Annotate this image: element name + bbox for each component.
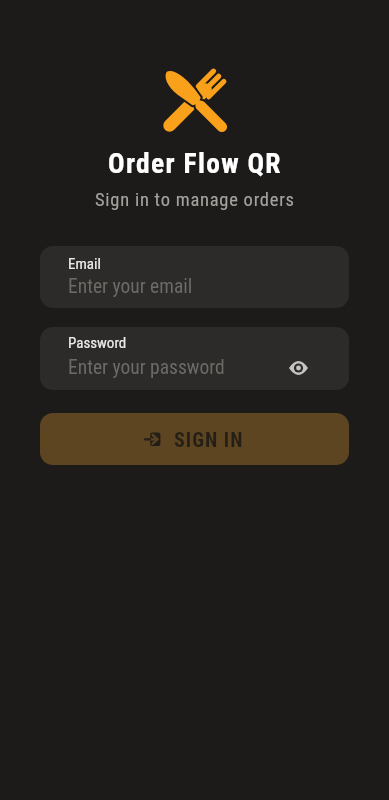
staticText: Password <box>68 334 127 352</box>
button[interactable]: Email <box>40 246 349 308</box>
staticText: Enter your password <box>68 356 225 379</box>
staticText: Enter your email <box>68 275 193 298</box>
staticText: Sign in to manage orders <box>95 189 295 211</box>
button[interactable]: Password <box>40 327 349 390</box>
staticText: SIGN IN <box>174 428 244 451</box>
button[interactable]: SIGN IN <box>40 413 349 465</box>
staticText: Order Flow QR <box>108 147 282 179</box>
staticText: Email <box>68 255 101 273</box>
button[interactable] <box>279 355 317 381</box>
